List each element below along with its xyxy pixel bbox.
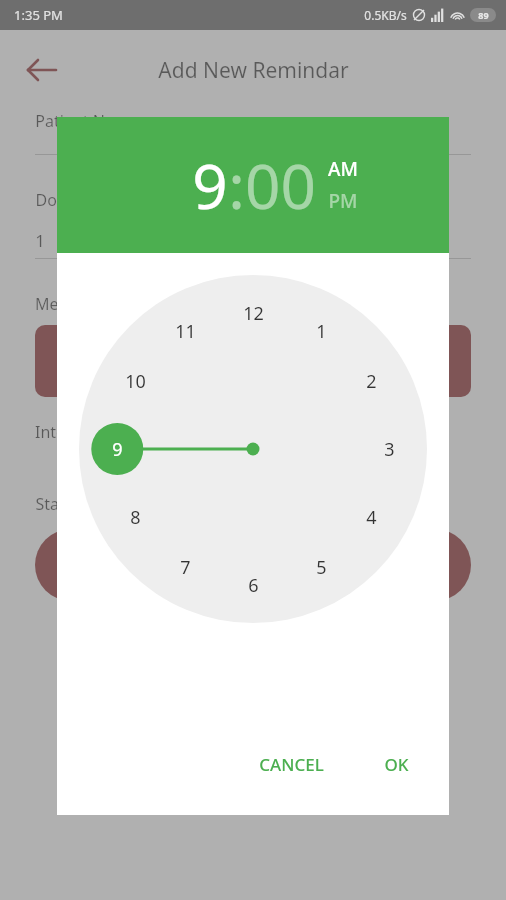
staticText: 1:35 PM bbox=[14, 6, 63, 24]
staticText: Patient Name bbox=[35, 110, 138, 132]
button[interactable]: 2 bbox=[349, 359, 393, 403]
button[interactable]: Back bbox=[22, 50, 62, 90]
staticText: 4 bbox=[366, 505, 377, 530]
button[interactable]: PM bbox=[328, 188, 358, 214]
button[interactable]: 7 bbox=[163, 545, 207, 589]
button[interactable]: 4 bbox=[349, 495, 393, 539]
staticText: : bbox=[228, 143, 245, 227]
button[interactable]: 11 bbox=[163, 309, 207, 353]
staticText: Add New Remindar bbox=[158, 56, 349, 85]
staticText: Interval bbox=[35, 421, 93, 443]
button[interactable]: AM bbox=[328, 156, 358, 182]
staticText: 1 bbox=[316, 319, 327, 344]
button[interactable]: 12 bbox=[231, 291, 275, 335]
staticText: Start Time bbox=[35, 493, 113, 515]
staticText: 10 bbox=[125, 369, 146, 394]
staticText: 7 bbox=[180, 555, 191, 580]
staticText: 89 bbox=[478, 9, 489, 21]
button[interactable]: 00 bbox=[245, 143, 316, 227]
button[interactable]: CANCEL bbox=[247, 743, 336, 786]
staticText: 3 bbox=[384, 437, 395, 462]
button[interactable]: 9 bbox=[192, 143, 228, 227]
staticText: Dose bbox=[35, 189, 74, 211]
staticText: 12 bbox=[243, 301, 264, 326]
button[interactable]: 1 bbox=[299, 309, 343, 353]
button[interactable]: 6 bbox=[231, 563, 275, 607]
button[interactable] bbox=[35, 529, 107, 601]
staticText: 0.5KB/s bbox=[364, 7, 407, 23]
staticText: OK bbox=[384, 753, 409, 776]
button[interactable]: 9 bbox=[95, 427, 139, 471]
staticText: 1 bbox=[35, 229, 45, 252]
staticText: 9 bbox=[112, 437, 123, 462]
button[interactable]: 3 bbox=[367, 427, 411, 471]
staticText: 11 bbox=[175, 319, 196, 344]
button[interactable]: 8 bbox=[113, 495, 157, 539]
staticText: Medicine Type bbox=[35, 293, 143, 315]
staticText: CANCEL bbox=[259, 753, 324, 776]
button[interactable]: OK bbox=[372, 743, 421, 786]
button[interactable] bbox=[35, 325, 107, 397]
staticText: 8 bbox=[130, 505, 141, 530]
button[interactable] bbox=[399, 529, 471, 601]
button[interactable]: 10 bbox=[113, 359, 157, 403]
staticText: 5 bbox=[316, 555, 327, 580]
staticText: 2 bbox=[366, 369, 377, 394]
button[interactable] bbox=[399, 325, 471, 397]
button[interactable]: 5 bbox=[299, 545, 343, 589]
staticText: 6 bbox=[248, 573, 259, 598]
